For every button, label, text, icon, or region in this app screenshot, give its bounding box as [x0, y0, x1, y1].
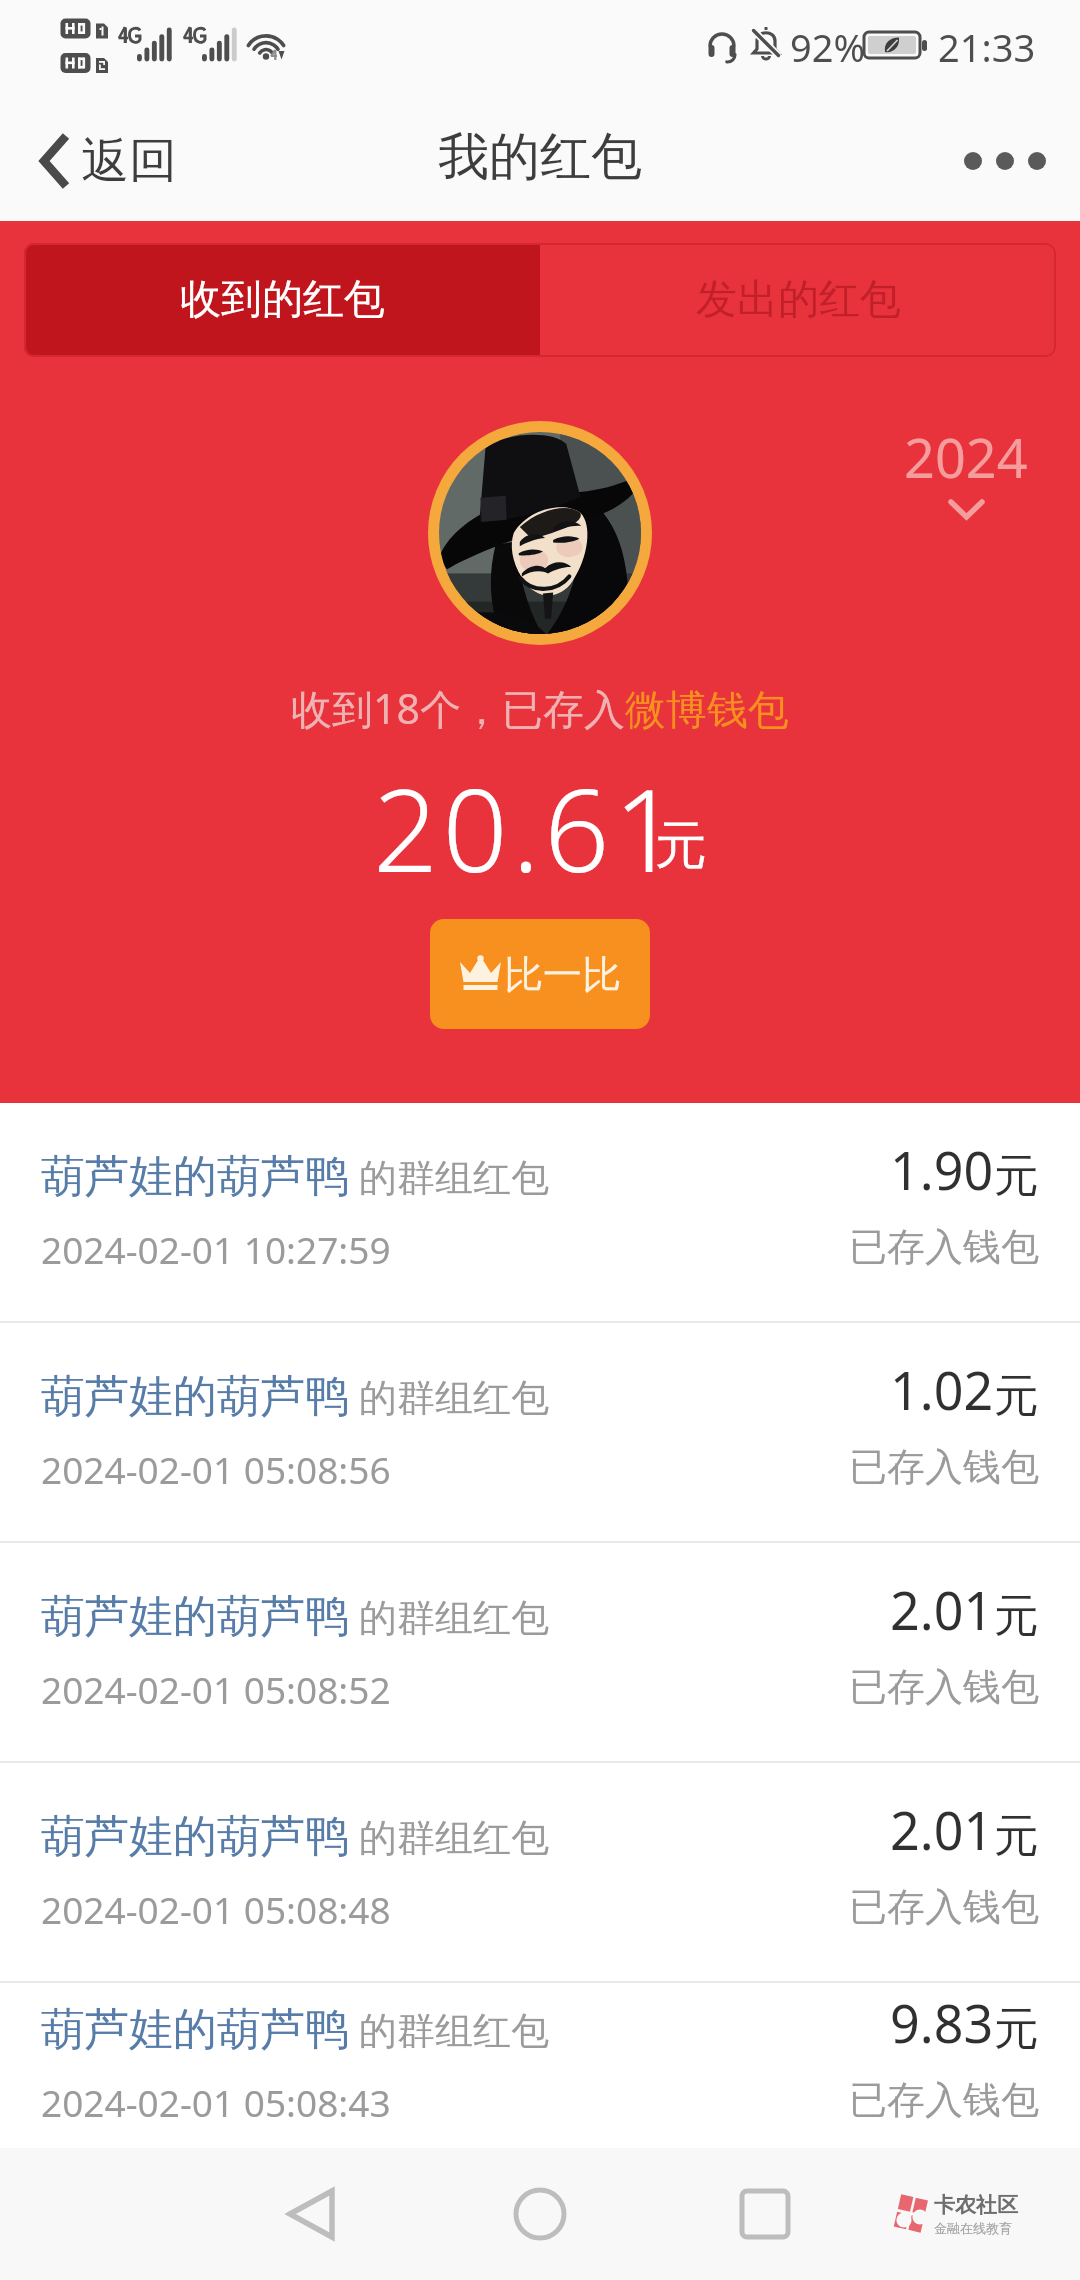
button[interactable]: 2024 — [904, 420, 1028, 521]
staticText: 葫芦娃的葫芦鸭 的群组红包 — [41, 1149, 549, 1204]
staticText: 金融在线教育 — [934, 2220, 1012, 2236]
staticText: 收到的红包 — [180, 274, 385, 326]
staticText: 已存入钱包 — [849, 1223, 1039, 1271]
staticText: 葫芦娃的葫芦鸭 的群组红包 — [41, 1589, 549, 1644]
staticText: 92% — [790, 21, 866, 73]
staticText: 元 — [994, 1588, 1039, 1645]
staticText: 元 — [655, 813, 707, 879]
staticText: 1.02 — [890, 1354, 994, 1425]
button[interactable]: Recents — [720, 2169, 810, 2259]
staticText: 已存入钱包 — [849, 1663, 1039, 1711]
staticText: 2024-02-01 05:08:48 — [41, 1884, 391, 1934]
button[interactable]: More options — [930, 118, 1080, 204]
staticText: 21:33 — [938, 21, 1036, 73]
staticText: 已存入钱包 — [849, 1443, 1039, 1491]
staticText: 2024 — [904, 420, 1028, 494]
staticText: 葫芦娃的葫芦鸭 的群组红包 — [41, 1809, 549, 1864]
staticText: 元 — [994, 2001, 1039, 2058]
staticText: 返回 — [81, 131, 177, 191]
button[interactable]: 葫芦娃的葫芦鸭 的群组红包 — [0, 1103, 1080, 1321]
staticText: 元 — [994, 1368, 1039, 1425]
staticText: 9.83 — [890, 1987, 994, 2058]
button[interactable]: Back — [268, 2169, 358, 2259]
button[interactable]: Avatar — [428, 421, 652, 645]
button[interactable]: 葫芦娃的葫芦鸭 的群组红包 — [0, 1983, 1080, 2148]
staticText: 元 — [994, 1148, 1039, 1205]
staticText: 葫芦娃的葫芦鸭 的群组红包 — [41, 2002, 549, 2057]
staticText: 2024-02-01 05:08:56 — [41, 1444, 391, 1494]
staticText: 比一比 — [504, 950, 621, 999]
staticText: 2024-02-01 05:08:43 — [41, 2077, 391, 2127]
staticText: 已存入钱包 — [849, 2076, 1039, 2124]
staticText: 2024-02-01 05:08:52 — [41, 1664, 391, 1714]
staticText: 已存入钱包 — [849, 1883, 1039, 1931]
staticText: 2.01 — [890, 1794, 994, 1865]
staticText: 卡农社区 — [934, 2192, 1018, 2218]
button[interactable]: 发出的红包 — [540, 243, 1056, 357]
staticText: 葫芦娃的葫芦鸭 的群组红包 — [41, 1369, 549, 1424]
button[interactable]: 葫芦娃的葫芦鸭 的群组红包 — [0, 1543, 1080, 1761]
button[interactable]: 葫芦娃的葫芦鸭 的群组红包 — [0, 1763, 1080, 1981]
staticText: 我的红包 — [438, 125, 642, 189]
staticText: 2024-02-01 10:27:59 — [41, 1224, 391, 1274]
staticText: 20.61 — [373, 750, 684, 905]
button[interactable]: 比一比 — [430, 919, 650, 1029]
staticText: 发出的红包 — [696, 274, 901, 326]
staticText: 2.01 — [890, 1574, 994, 1645]
staticText: 1.90 — [890, 1134, 994, 1205]
staticText: 收到18个，已存入微博钱包 — [291, 680, 789, 736]
staticText: 元 — [994, 1808, 1039, 1865]
button[interactable]: Home — [495, 2169, 585, 2259]
button[interactable]: 葫芦娃的葫芦鸭 的群组红包 — [0, 1323, 1080, 1541]
button[interactable]: 收到的红包 — [24, 243, 540, 357]
button[interactable]: 返回 — [0, 111, 201, 211]
